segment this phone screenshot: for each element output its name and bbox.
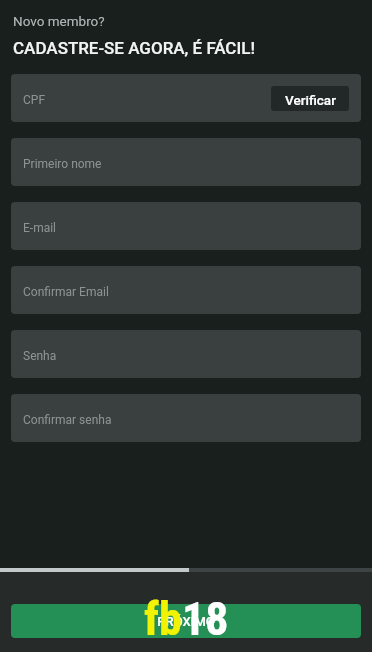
- button[interactable]: Confirmar senha: [11, 394, 361, 442]
- button[interactable]: Verificar: [271, 86, 349, 111]
- staticText: Primeiro nome: [23, 157, 102, 171]
- staticText: PRÓXIMO: [157, 614, 215, 629]
- staticText: Novo membro?: [13, 13, 105, 29]
- staticText: Confirmar Email: [23, 285, 109, 299]
- staticText: fb: [144, 592, 182, 646]
- button[interactable]: Confirmar Email: [11, 266, 361, 314]
- staticText: E-mail: [23, 221, 57, 235]
- button[interactable]: Primeiro nome: [11, 138, 361, 186]
- other: fb18: [144, 592, 229, 646]
- staticText: Senha: [23, 349, 57, 363]
- button[interactable]: PRÓXIMO: [11, 604, 361, 638]
- staticText: 18: [182, 592, 229, 646]
- button[interactable]: E-mail: [11, 202, 361, 250]
- button[interactable]: Senha: [11, 330, 361, 378]
- staticText: CPF: [23, 93, 46, 107]
- staticText: Verificar: [285, 92, 336, 108]
- staticText: CADASTRE-SE AGORA, É FÁCIL!: [13, 38, 255, 58]
- button[interactable]: CPF: [11, 74, 361, 122]
- staticText: Confirmar senha: [23, 413, 112, 427]
